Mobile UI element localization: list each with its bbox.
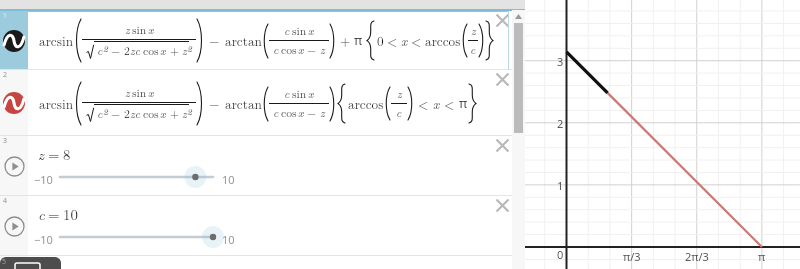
staticText: c	[284, 23, 290, 39]
staticText: z	[125, 85, 130, 101]
staticText: z	[320, 105, 325, 121]
staticText: 0	[377, 32, 384, 50]
staticText: arccos	[425, 32, 461, 50]
staticText: c	[470, 42, 476, 58]
staticText: −	[111, 43, 121, 59]
staticText: cos	[281, 42, 297, 58]
button[interactable]: Play slider 4	[0, 196, 28, 256]
staticText: 2	[124, 106, 130, 122]
staticText: −10	[34, 232, 53, 247]
staticText: −10	[34, 172, 53, 187]
staticText: z	[471, 23, 476, 39]
staticText: x	[308, 86, 314, 102]
staticText: π	[758, 249, 766, 263]
staticText: c	[396, 105, 402, 121]
staticText: zc	[130, 106, 141, 122]
staticText: c	[97, 106, 103, 122]
button[interactable]: Delete expression 4	[496, 199, 509, 212]
staticText: arctan	[225, 95, 262, 113]
staticText: sin	[132, 85, 147, 101]
staticText: 10	[63, 204, 78, 224]
staticText: −	[111, 106, 121, 122]
staticText: 5	[2, 257, 7, 267]
staticText: π	[459, 95, 468, 112]
staticText: x	[308, 23, 314, 39]
staticText: zc	[130, 43, 141, 59]
staticText: 0	[557, 247, 564, 262]
staticText: =	[48, 204, 60, 224]
staticText: −	[209, 32, 220, 50]
button[interactable]: Play slider 3	[0, 136, 28, 196]
staticText: 3	[3, 136, 8, 146]
staticText: x	[433, 95, 440, 113]
button[interactable]: Delete expression 1	[496, 14, 509, 27]
staticText: −	[209, 95, 220, 113]
staticText: c	[97, 43, 103, 59]
staticText: x	[160, 106, 166, 122]
staticText: z	[320, 42, 325, 58]
staticText: +	[340, 32, 351, 50]
staticText: +	[170, 106, 180, 122]
staticText: 4	[3, 196, 8, 206]
staticText: 2	[103, 105, 108, 118]
staticText: z	[182, 43, 187, 59]
staticText: <	[418, 95, 429, 113]
staticText: arctan	[225, 32, 262, 50]
staticText: −	[307, 42, 317, 58]
button[interactable]: Show keypad	[0, 257, 61, 269]
staticText: cos	[143, 43, 159, 59]
staticText: <	[387, 32, 398, 50]
staticText: c	[273, 105, 279, 121]
staticText: cos	[143, 106, 159, 122]
staticText: x	[148, 22, 154, 38]
staticText: 10	[222, 172, 235, 187]
staticText: cos	[281, 105, 297, 121]
staticText: <	[444, 95, 455, 113]
staticText: 2	[3, 70, 8, 80]
staticText: arcsin	[39, 32, 74, 50]
staticText: x	[148, 85, 154, 101]
staticText: <	[411, 32, 422, 50]
staticText: −	[307, 105, 317, 121]
staticText: x	[160, 43, 166, 59]
button[interactable]: Delete expression 3	[496, 139, 509, 152]
staticText: 2	[124, 43, 130, 59]
button[interactable]: Scroll up	[515, 14, 522, 19]
staticText: arcsin	[39, 95, 74, 113]
staticText: 1	[3, 11, 8, 21]
staticText: x	[298, 105, 304, 121]
staticText: c	[38, 204, 45, 224]
staticText: z	[38, 144, 45, 164]
button[interactable]: Toggle graph 1	[0, 11, 28, 70]
staticText: =	[48, 144, 60, 164]
staticText: z	[125, 22, 130, 38]
staticText: π/3	[623, 249, 641, 263]
staticText: +	[170, 43, 180, 59]
staticText: 2	[187, 105, 192, 118]
staticText: 1	[557, 178, 564, 193]
staticText: sin	[292, 23, 307, 39]
button[interactable]: Toggle graph 2	[0, 70, 28, 136]
button[interactable]: Delete expression 2	[496, 73, 509, 86]
staticText: 2	[187, 42, 192, 55]
staticText: 2	[103, 42, 108, 55]
staticText: 2π/3	[685, 249, 709, 263]
staticText: x	[401, 32, 408, 50]
staticText: x	[298, 42, 304, 58]
staticText: 2	[557, 116, 564, 131]
staticText: sin	[132, 22, 147, 38]
staticText: 3	[557, 54, 564, 69]
staticText: z	[182, 106, 187, 122]
staticText: c	[273, 42, 279, 58]
staticText: π	[354, 32, 363, 49]
staticText: sin	[292, 86, 307, 102]
staticText: arccos	[348, 95, 384, 113]
staticText: z	[397, 86, 402, 102]
staticText: 10	[222, 232, 235, 247]
staticText: c	[284, 86, 290, 102]
staticText: 8	[63, 144, 71, 164]
